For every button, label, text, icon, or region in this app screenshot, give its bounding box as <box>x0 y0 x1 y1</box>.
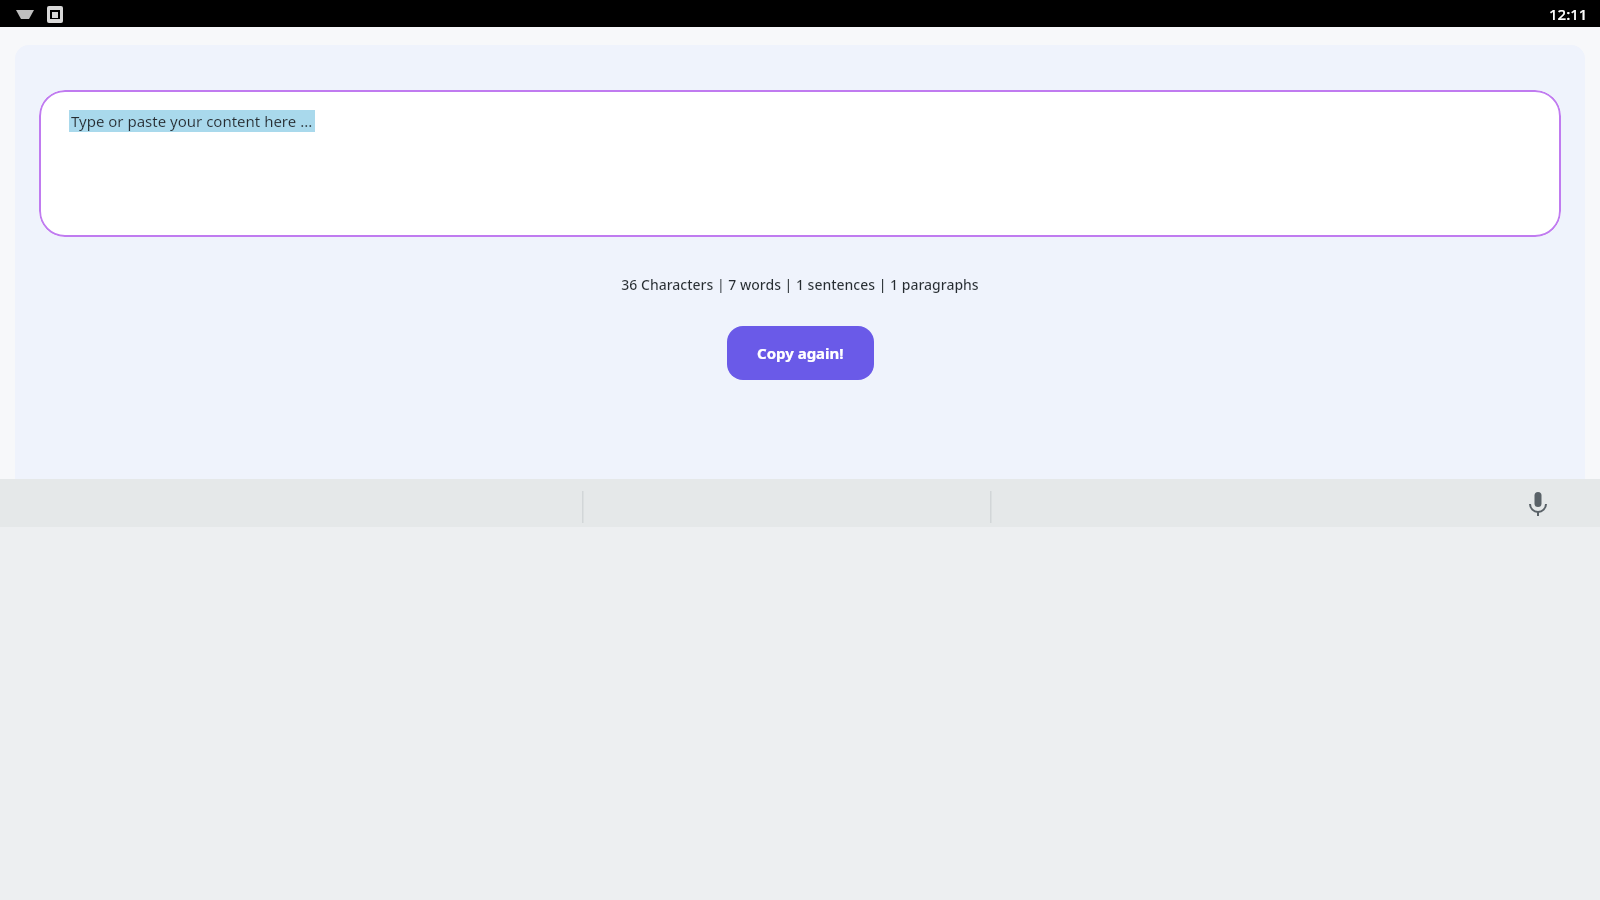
button[interactable]: Type or paste your content here ... <box>39 90 1561 237</box>
button[interactable]: Copy again! <box>727 326 874 380</box>
staticText: Copy again! <box>757 343 844 363</box>
staticText: Type or paste your content here ... <box>71 111 313 131</box>
button[interactable]: Voice input <box>1518 483 1558 523</box>
staticText: 12:11 <box>1549 4 1588 24</box>
staticText: 36 Characters | 7 words | 1 sentences | … <box>15 275 1585 294</box>
